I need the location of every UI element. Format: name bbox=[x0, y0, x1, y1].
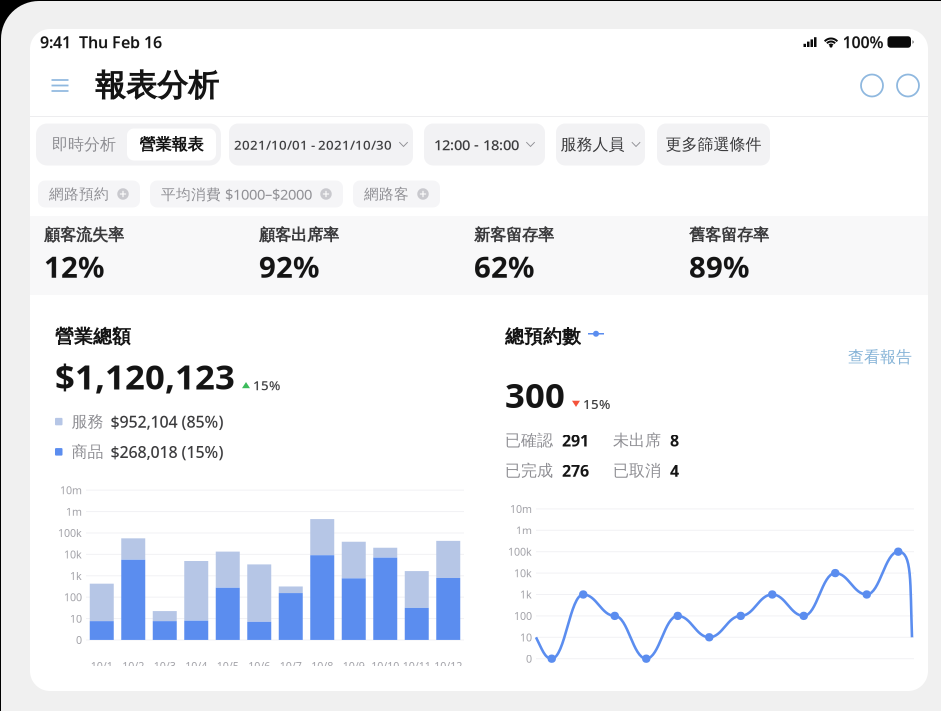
staticText: 10/9 bbox=[343, 659, 365, 673]
staticText: 9:41 bbox=[40, 31, 71, 53]
staticText: 1k bbox=[520, 587, 532, 602]
staticText: 8 bbox=[670, 430, 679, 451]
button[interactable]: Menu bbox=[43, 68, 77, 102]
staticText: 10/9 bbox=[793, 677, 815, 692]
staticText: Thu Feb 16 bbox=[79, 31, 162, 53]
staticText: 10/8 bbox=[761, 677, 783, 692]
staticText: 10/5 bbox=[217, 659, 239, 673]
button[interactable]: 即時分析 bbox=[41, 128, 127, 160]
staticText: 276 bbox=[562, 460, 589, 481]
staticText: 10/6 bbox=[248, 659, 270, 673]
staticText: 舊客留存率 bbox=[689, 225, 769, 245]
staticText: 10/11 bbox=[853, 677, 881, 692]
button[interactable]: 平均消費 $1000–$2000 bbox=[150, 180, 343, 207]
staticText: 1m bbox=[516, 523, 532, 537]
staticText: 10/1 bbox=[541, 677, 563, 692]
staticText: 4 bbox=[670, 460, 679, 481]
staticText: 10 bbox=[70, 611, 82, 626]
staticText: 62% bbox=[474, 247, 534, 286]
staticText: 10/7 bbox=[730, 677, 752, 692]
staticText: 即時分析 bbox=[52, 135, 116, 154]
staticText: 已完成 bbox=[505, 461, 553, 480]
staticText: $1,120,123 bbox=[55, 353, 235, 399]
staticText: 92% bbox=[259, 247, 319, 286]
staticText: 100k bbox=[508, 545, 532, 559]
staticText: 10/8 bbox=[311, 659, 333, 673]
staticText: 10/12 bbox=[884, 677, 912, 692]
staticText: 15% bbox=[583, 395, 610, 413]
staticText: 10/2 bbox=[572, 677, 594, 692]
staticText: 服務 bbox=[71, 412, 103, 431]
staticText: 已確認 bbox=[505, 430, 553, 450]
staticText: 100k bbox=[58, 526, 82, 540]
staticText: $268,018 (15%) bbox=[110, 441, 223, 462]
staticText: 總預約數 bbox=[505, 325, 581, 348]
staticText: 291 bbox=[562, 430, 589, 451]
staticText: 10/12 bbox=[434, 659, 462, 673]
staticText: 12% bbox=[44, 247, 104, 286]
button[interactable]: 網路客 bbox=[353, 180, 440, 207]
staticText: 2021/10/01 - 2021/10/30 bbox=[234, 136, 392, 153]
staticText: 營業報表 bbox=[139, 135, 203, 154]
staticText: 100 bbox=[514, 609, 532, 623]
staticText: 10m bbox=[60, 483, 82, 497]
staticText: 10m bbox=[510, 502, 532, 516]
staticText: 12:00 - 18:00 bbox=[434, 135, 519, 154]
staticText: 服務人員 bbox=[560, 135, 624, 154]
staticText: 網路客 bbox=[364, 185, 409, 203]
staticText: 商品 bbox=[71, 442, 103, 462]
staticText: 顧客出席率 bbox=[259, 225, 339, 245]
staticText: 0 bbox=[76, 633, 82, 647]
staticText: 10/4 bbox=[185, 659, 207, 673]
staticText: 89% bbox=[689, 247, 749, 286]
button[interactable]: 營業報表 bbox=[127, 128, 216, 160]
staticText: 10/5 bbox=[667, 677, 689, 692]
button[interactable]: Account bbox=[890, 67, 926, 103]
staticText: 10k bbox=[514, 566, 532, 580]
button[interactable]: 2021/10/01 - 2021/10/30 bbox=[229, 123, 413, 165]
staticText: 15% bbox=[253, 376, 280, 394]
staticText: 未出席 bbox=[613, 430, 661, 450]
staticText: 已取消 bbox=[613, 461, 661, 480]
staticText: 1m bbox=[66, 504, 82, 519]
staticText: 新客留存率 bbox=[474, 225, 554, 245]
staticText: 10/4 bbox=[635, 677, 657, 692]
staticText: 1k bbox=[70, 569, 82, 583]
staticText: 營業總額 bbox=[55, 325, 131, 348]
staticText: 300 bbox=[505, 372, 565, 418]
staticText: 10/7 bbox=[280, 659, 302, 673]
staticText: 網路預約 bbox=[49, 185, 109, 203]
staticText: 10/1 bbox=[91, 659, 113, 673]
button[interactable]: 更多篩選條件 bbox=[657, 123, 770, 165]
staticText: 更多篩選條件 bbox=[665, 135, 761, 154]
staticText: 100 bbox=[64, 590, 82, 604]
staticText: 顧客流失率 bbox=[44, 225, 124, 245]
button[interactable]: 12:00 - 18:00 bbox=[424, 123, 545, 165]
staticText: 10/6 bbox=[698, 677, 720, 692]
staticText: 10/3 bbox=[604, 677, 626, 692]
staticText: 0 bbox=[526, 652, 532, 666]
button[interactable]: 查看報告 bbox=[848, 325, 912, 367]
staticText: 10/3 bbox=[154, 659, 176, 673]
staticText: $952,104 (85%) bbox=[110, 411, 223, 432]
staticText: 10/10 bbox=[821, 677, 849, 692]
staticText: 平均消費 $1000–$2000 bbox=[161, 184, 312, 204]
staticText: 報表分析 bbox=[95, 67, 219, 104]
staticText: 查看報告 bbox=[848, 347, 912, 367]
button[interactable]: 網路預約 bbox=[38, 180, 140, 207]
staticText: 10 bbox=[520, 630, 532, 644]
staticText: 10/11 bbox=[403, 659, 431, 673]
button[interactable]: Notifications bbox=[854, 67, 890, 103]
staticText: 10k bbox=[64, 547, 82, 561]
staticText: 100% bbox=[842, 31, 883, 53]
staticText: 10/2 bbox=[122, 659, 144, 673]
staticText: 10/10 bbox=[371, 659, 399, 673]
button[interactable]: 服務人員 bbox=[556, 123, 645, 165]
